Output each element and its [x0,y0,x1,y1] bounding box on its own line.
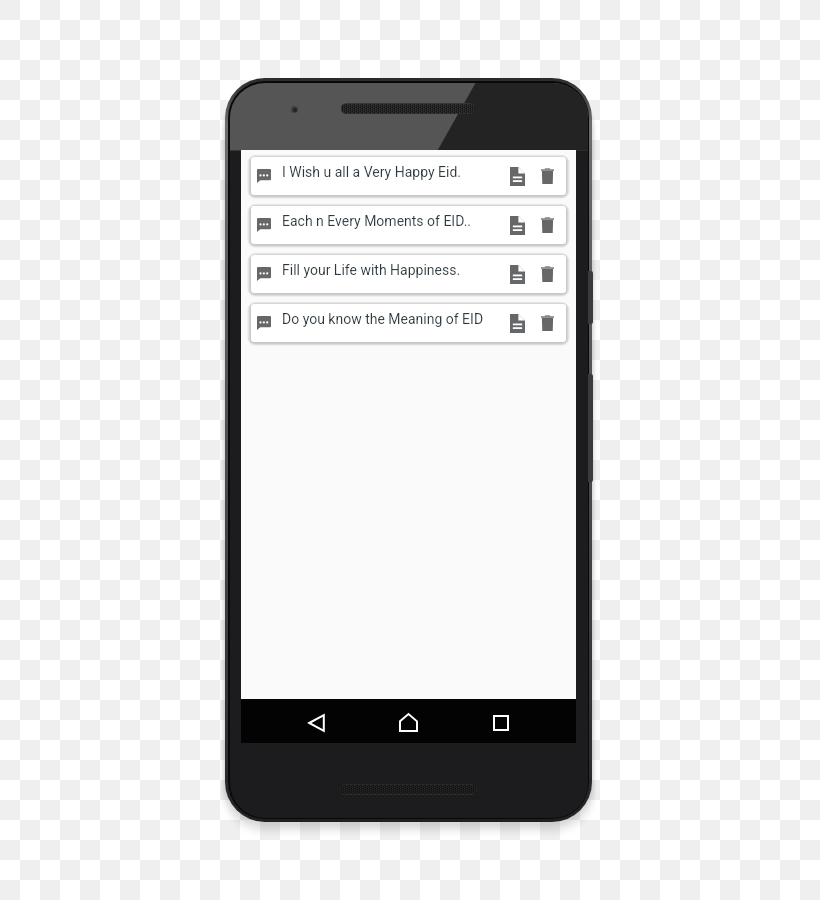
staticText: Do you know the Meaning of EID [282,311,510,327]
button[interactable]: Back [294,701,338,745]
button[interactable]: Open message [510,304,525,342]
button[interactable]: Open message [510,157,525,195]
button[interactable]: Home [386,700,430,744]
staticText: I Wish u all a Very Happy Eid. [282,164,510,180]
button[interactable]: Open message [510,255,525,293]
button[interactable]: Fill your Life with Happiness. [251,255,566,293]
button[interactable]: Recents [479,701,523,745]
button[interactable]: Open message [510,206,525,244]
staticText: Each n Every Moments of EID.. [282,213,510,229]
button[interactable]: Delete message [541,206,554,244]
button[interactable]: Delete message [541,304,554,342]
button[interactable]: Do you know the Meaning of EID [251,304,566,342]
button[interactable]: Delete message [541,157,554,195]
button[interactable]: Delete message [541,255,554,293]
staticText: Fill your Life with Happiness. [282,262,510,278]
button[interactable]: I Wish u all a Very Happy Eid. [251,157,566,195]
button[interactable]: Each n Every Moments of EID.. [251,206,566,244]
